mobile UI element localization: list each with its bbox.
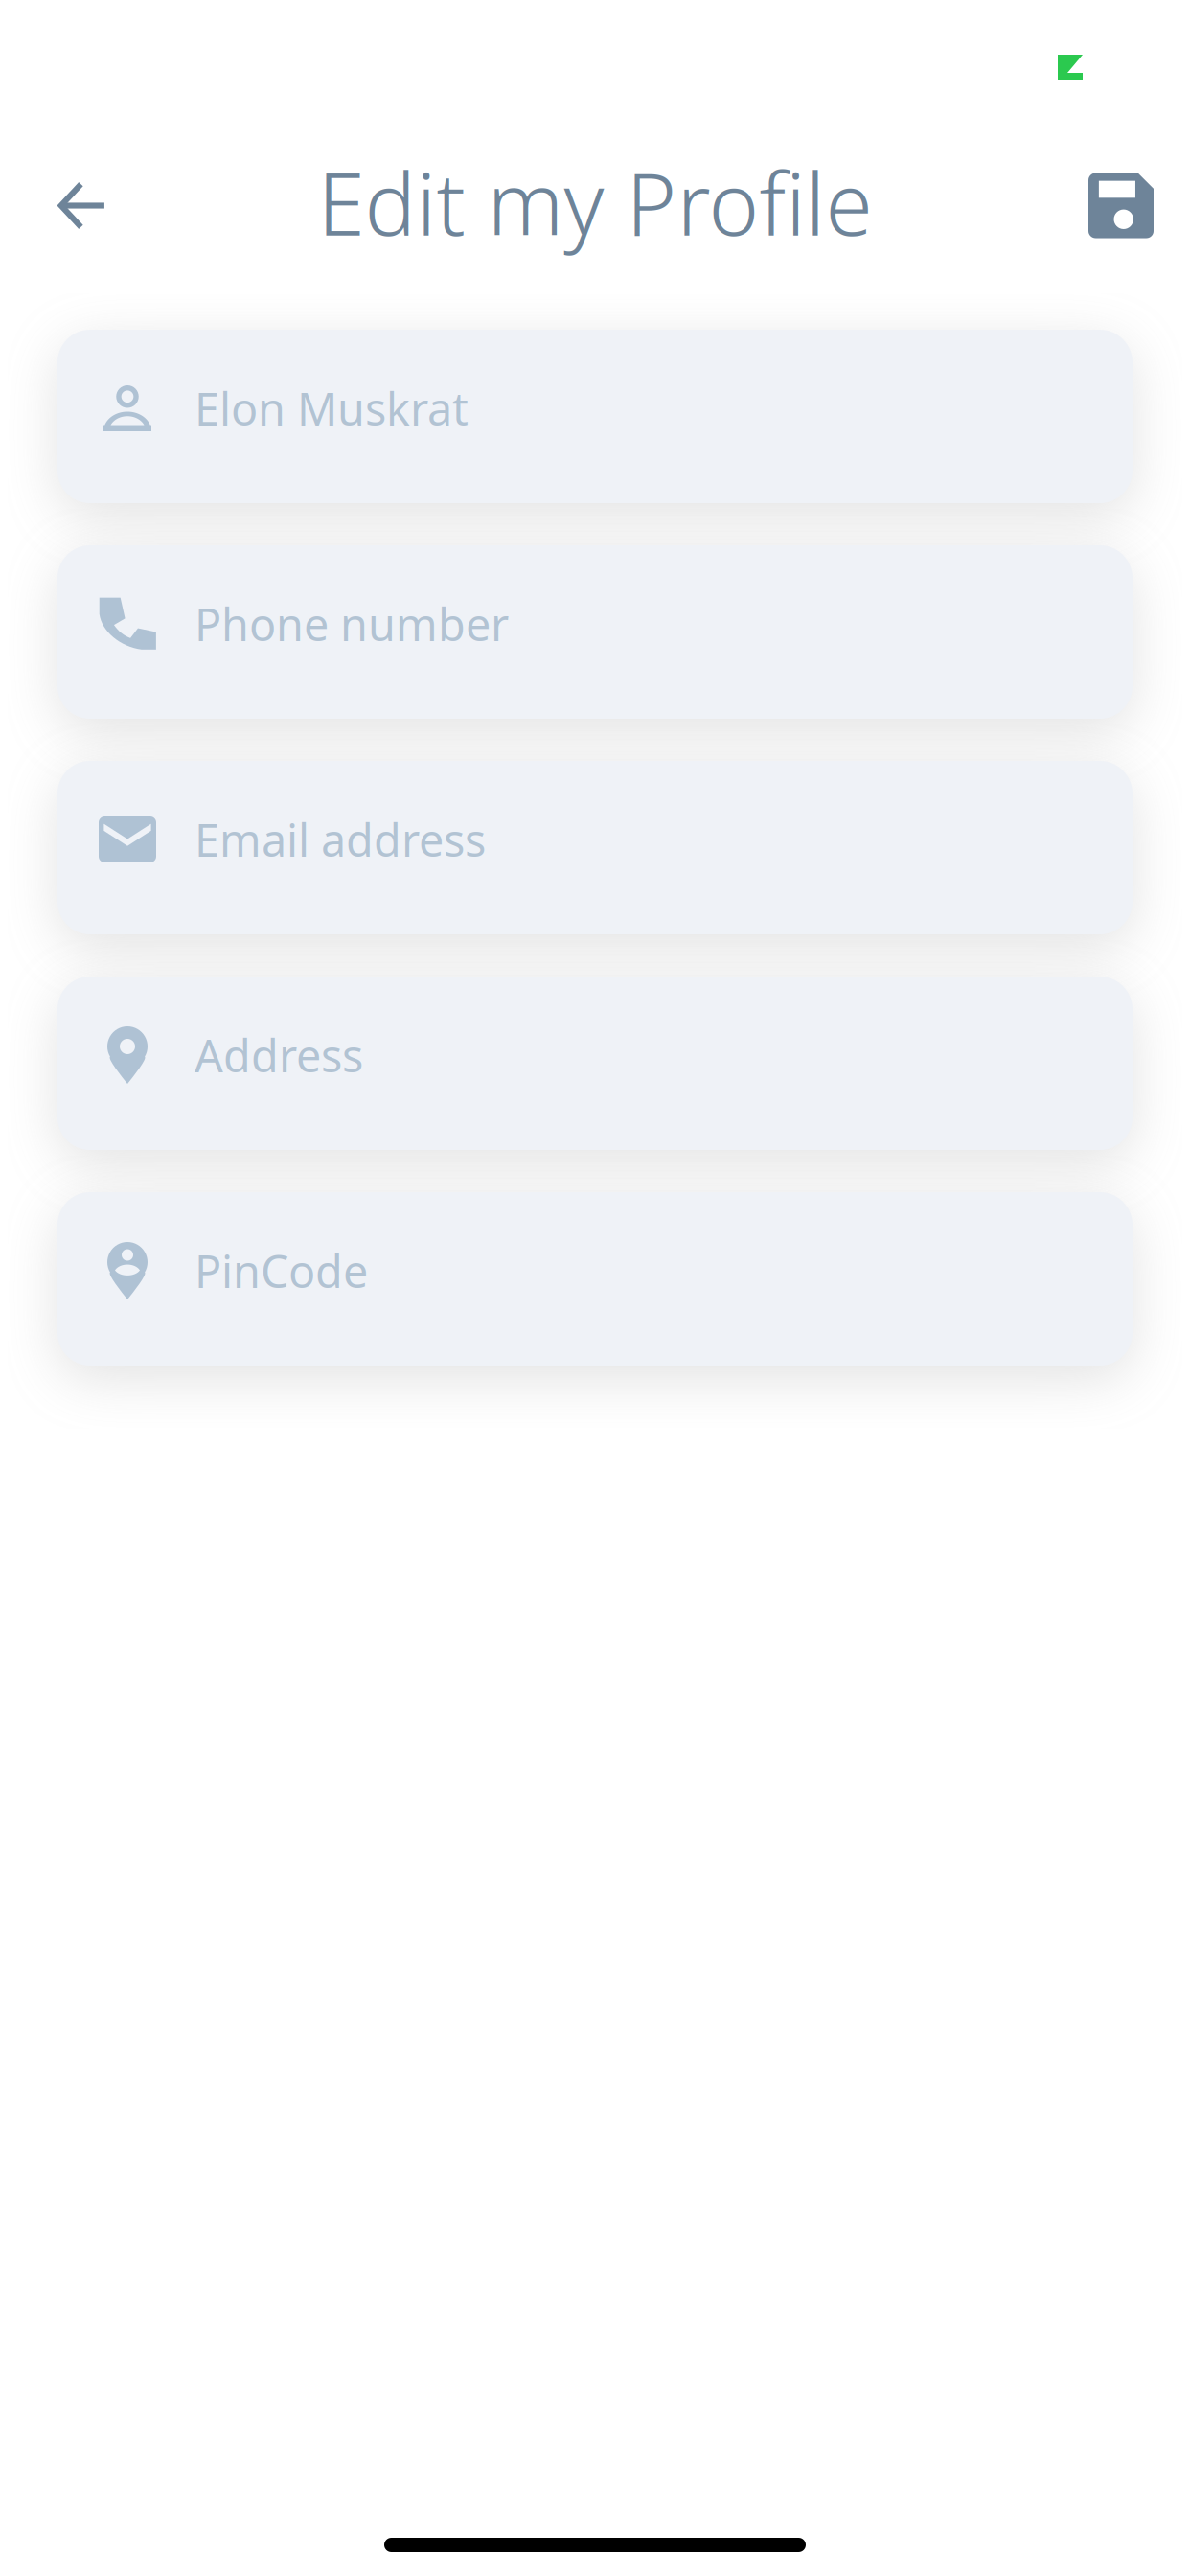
staticText: Phone number [195,594,509,654]
button[interactable]: Email address [57,761,1133,934]
button[interactable]: PinCode [57,1192,1133,1366]
button[interactable]: Address [57,977,1133,1150]
button[interactable]: Elon Muskrat [57,330,1133,503]
button[interactable]: Back [35,159,129,253]
staticText: Elon Muskrat [195,379,469,438]
staticText: Email address [195,810,486,869]
button[interactable]: Save [1074,159,1168,253]
button[interactable]: Phone number [57,545,1133,719]
staticText: Edit my Profile [318,145,872,259]
staticText: Address [195,1025,363,1085]
staticText: PinCode [195,1241,368,1300]
